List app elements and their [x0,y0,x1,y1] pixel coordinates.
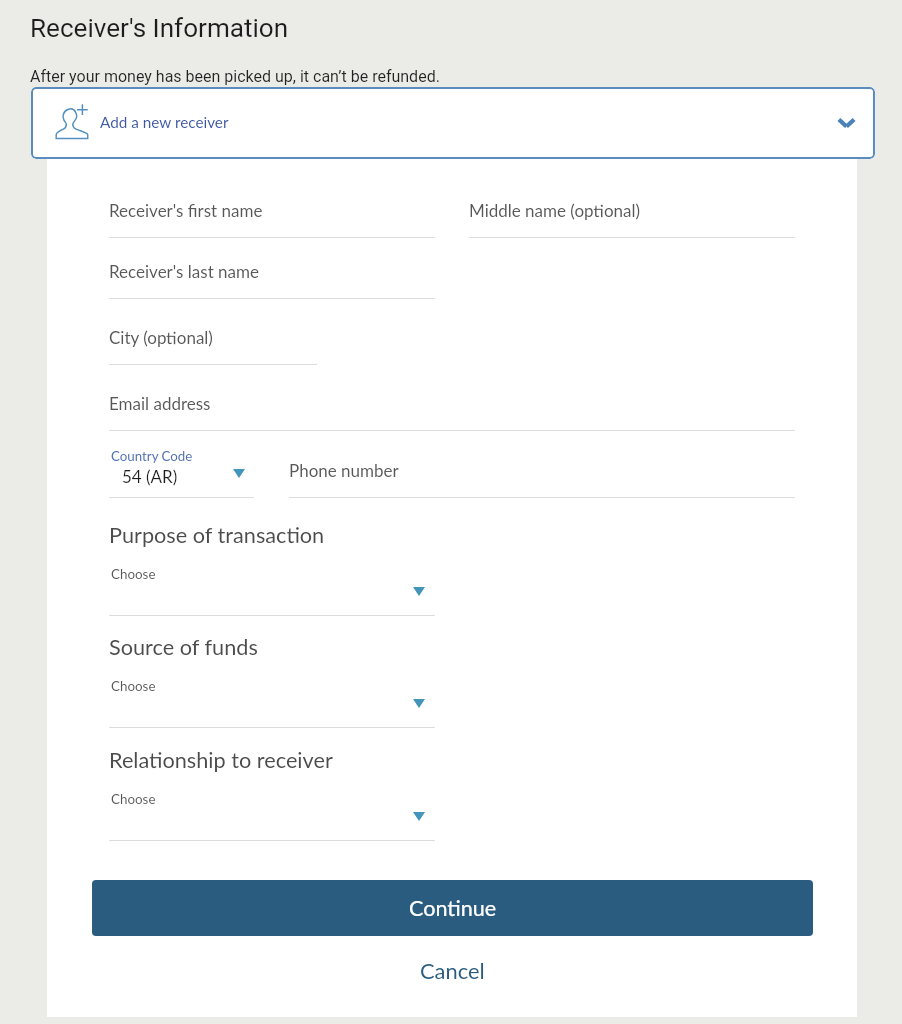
staticText: Choose [111,566,156,582]
button[interactable]: Choose [109,559,435,616]
button[interactable]: Receiver's first name [109,188,435,238]
button[interactable]: Choose [109,784,435,841]
staticText: Receiver's first name [109,200,263,220]
button[interactable]: Choose [109,671,435,728]
other: Expand receiver list [837,117,856,129]
other: Open menu [413,587,425,596]
staticText: Receiver's last name [109,261,259,281]
staticText: Cancel [420,957,485,983]
staticText: Choose [111,678,156,694]
staticText: Phone number [289,460,399,480]
staticText: City (optional) [109,327,213,347]
staticText: Choose [111,791,156,807]
button[interactable]: Email address [109,381,795,431]
button[interactable]: City (optional) [109,315,317,365]
other: Open menu [413,699,425,708]
button[interactable]: Add a new receiver [31,87,875,159]
staticText: Add a new receiver [100,113,229,131]
button[interactable]: Phone number [289,448,795,498]
button[interactable]: Continue [92,880,813,936]
staticText: 54 (AR) [122,466,178,486]
other: Open menu [413,812,425,821]
other: Open menu [233,469,245,478]
staticText: Purpose of transaction [109,522,325,548]
staticText: Email address [109,393,211,413]
button[interactable]: Middle name (optional) [469,188,795,238]
staticText: After your money has been picked up, it … [30,67,440,86]
staticText: Relationship to receiver [109,747,333,773]
staticText: Source of funds [109,634,258,660]
staticText: Middle name (optional) [469,200,641,220]
staticText: Country Code [111,448,193,464]
staticText: Receiver's Information [30,13,289,44]
button[interactable]: Receiver's last name [109,249,435,299]
button[interactable]: Cancel [92,946,812,994]
staticText: Continue [409,895,497,921]
button[interactable]: Country Code [109,448,254,486]
